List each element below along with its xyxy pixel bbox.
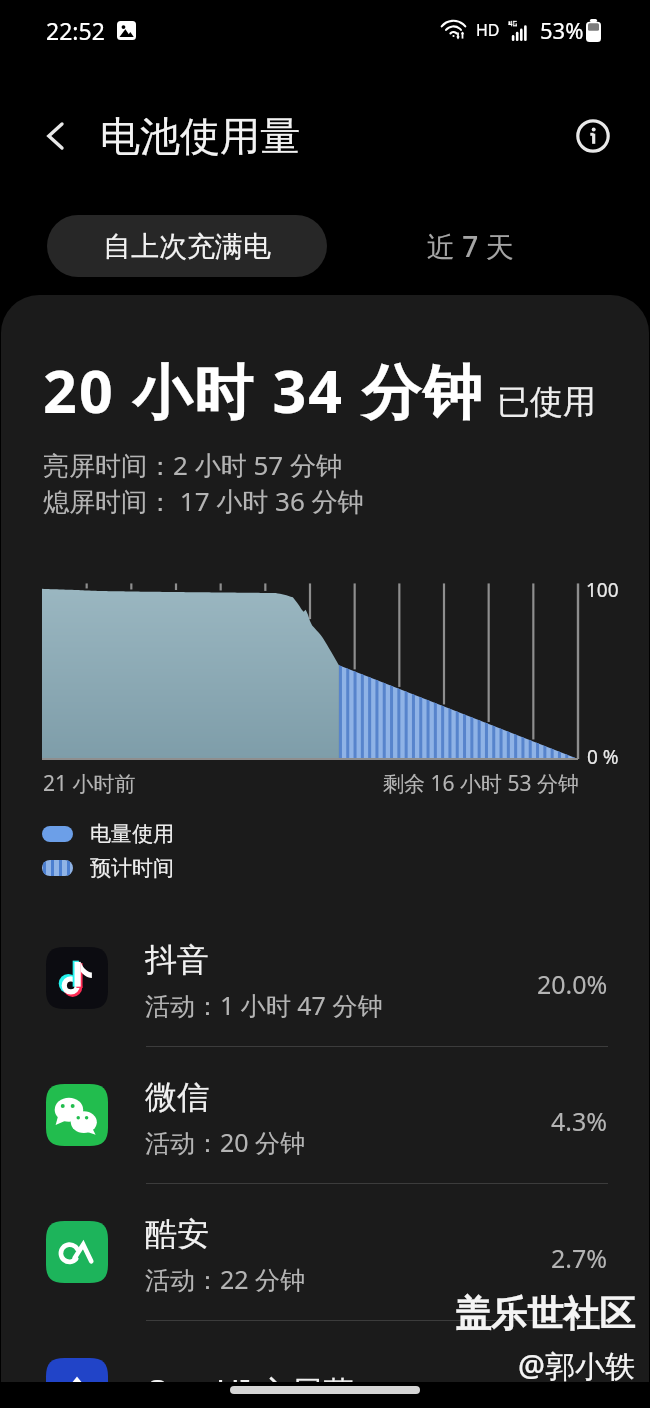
staticText: 亮屏时间：2 小时 57 分钟 [43,447,342,483]
staticText: 自上次充满电 [103,229,271,264]
staticText: 电池使用量 [100,111,300,161]
staticText: 21 小时前 [43,769,136,798]
button[interactable]: 酷安 [0,1184,650,1320]
staticText: 已使用 [497,381,596,423]
button[interactable]: One UI 主屏幕 [0,1321,650,1408]
staticText: 活动：1 小时 47 分钟 [145,988,383,1022]
button[interactable]: 微信 [0,1047,650,1183]
staticText: 22:52 [46,15,105,46]
button[interactable]: Back [26,106,86,166]
staticText: 0 % [587,744,619,770]
button[interactable]: 抖音 [0,910,650,1046]
staticText: 预计时间 [90,855,174,881]
staticText: 微信 [145,1077,209,1117]
staticText: One UI 主屏幕 [145,1370,355,1408]
staticText: 盖乐世社区 [455,1291,635,1336]
staticText: 53% [540,15,584,45]
staticText: 4.3% [551,1104,608,1138]
staticText: HD [476,19,500,41]
staticText: @郭小轶 [518,1345,635,1386]
button[interactable]: 近 7 天 [345,215,595,277]
button[interactable]: 自上次充满电 [47,215,327,277]
staticText: 100 [586,577,619,603]
staticText: 活动：20 分钟 [145,1125,306,1159]
staticText: 20.0% [537,967,608,1001]
staticText: 抖音 [145,940,209,980]
staticText: 20 小时 34 分钟 [43,350,485,431]
staticText: 活动：22 分钟 [145,1262,306,1296]
button[interactable]: Information [565,108,621,164]
staticText: 电量使用 [90,821,174,847]
staticText: 剩余 16 小时 53 分钟 [383,769,579,798]
staticText: 熄屏时间： 17 小时 36 分钟 [43,483,364,519]
staticText: 近 7 天 [427,227,514,265]
staticText: 酷安 [145,1214,209,1254]
staticText: 2.7% [551,1241,608,1275]
